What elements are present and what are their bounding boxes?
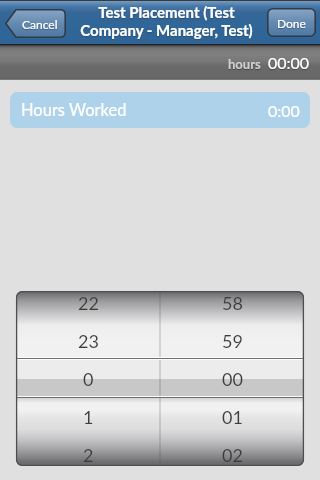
staticText: 01 <box>222 406 243 428</box>
staticText: Cancel <box>22 17 58 31</box>
staticText: 0:00 <box>268 101 300 120</box>
staticText: Hours Worked <box>21 100 127 120</box>
staticText: 00:00 <box>268 53 310 72</box>
button[interactable]: Done <box>267 8 316 37</box>
button[interactable]: Hours Worked <box>10 92 310 128</box>
button[interactable]: 2 <box>16 436 304 474</box>
button[interactable]: 23 <box>16 322 304 360</box>
button[interactable]: 0 <box>16 360 304 398</box>
staticText: Done <box>277 16 306 30</box>
button[interactable]: 1 <box>16 398 304 436</box>
staticText: 22 <box>78 292 99 314</box>
staticText: 2 <box>83 444 94 466</box>
staticText: Test Placement (Test Company - Manager, … <box>80 3 253 39</box>
staticText: 00 <box>222 368 243 390</box>
staticText: 58 <box>222 292 243 314</box>
staticText: 02 <box>222 444 243 466</box>
staticText: hours <box>228 56 261 72</box>
staticText: 0 <box>83 368 94 390</box>
button[interactable]: Cancel <box>4 9 66 38</box>
button[interactable]: 22 <box>16 284 304 322</box>
staticText: 59 <box>222 330 243 352</box>
staticText: 1 <box>83 406 94 428</box>
staticText: 23 <box>78 330 99 352</box>
